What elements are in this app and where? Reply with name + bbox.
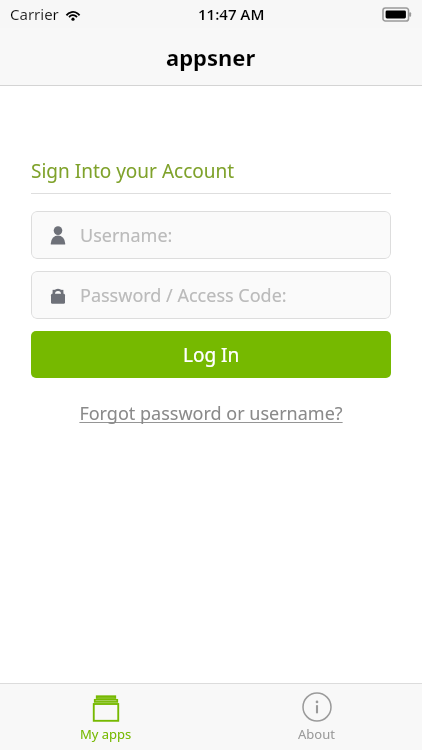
staticText: appsner (166, 42, 256, 72)
staticText: Username: (80, 223, 173, 248)
button[interactable]: Username: (31, 211, 391, 259)
button[interactable]: Password / Access Code: (31, 271, 391, 319)
staticText: Sign Into your Account (31, 158, 235, 184)
staticText: My apps (80, 725, 132, 743)
staticText: Carrier (10, 4, 59, 24)
staticText: Forgot password or username? (79, 401, 343, 426)
staticText: About (298, 725, 335, 743)
staticText: 11:47 AM (198, 4, 265, 24)
button[interactable]: Log In (31, 331, 391, 378)
button[interactable]: Forgot password or username? (75, 397, 347, 430)
button[interactable]: About (211, 684, 422, 750)
staticText: Password / Access Code: (80, 283, 287, 308)
staticText: Log In (183, 342, 240, 368)
button[interactable]: My apps (0, 684, 211, 750)
